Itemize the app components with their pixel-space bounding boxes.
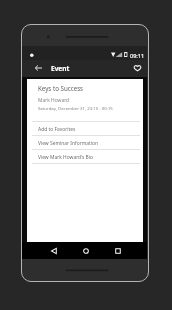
button[interactable]: Home xyxy=(77,242,95,259)
button[interactable]: Recent apps xyxy=(109,242,127,259)
staticText: Add to Favorites xyxy=(38,126,76,133)
staticText: Saturday, December 31, 23:15 - 00:15 xyxy=(38,105,113,111)
button[interactable]: Add to favorites xyxy=(129,60,145,76)
staticText: Event xyxy=(51,64,70,73)
button[interactable]: View Mark Howard's Bio xyxy=(27,150,143,164)
button[interactable]: Add to Favorites xyxy=(27,122,143,136)
button[interactable]: Navigate up xyxy=(30,60,46,76)
staticText: Keys to Success xyxy=(38,84,84,92)
staticText: 09:11 xyxy=(130,52,145,59)
staticText: Mark Howard xyxy=(38,97,70,104)
staticText: View Mark Howard's Bio xyxy=(38,154,94,161)
button[interactable]: Back xyxy=(45,242,63,259)
button[interactable]: View Seminar Information xyxy=(27,136,143,150)
staticText: View Seminar Information xyxy=(38,140,98,147)
